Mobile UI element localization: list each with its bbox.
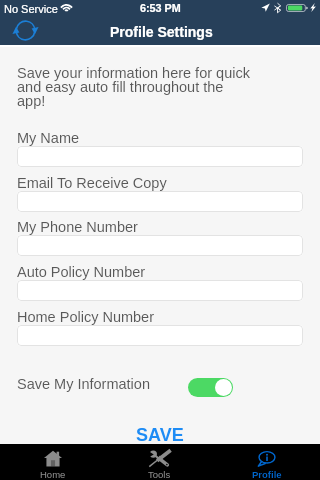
staticText: Tools	[148, 469, 171, 480]
staticText: Profile	[252, 469, 282, 480]
staticText: Home Policy Number	[17, 309, 154, 325]
staticText: Save My Information	[17, 376, 150, 392]
staticText: Auto Policy Number	[17, 264, 146, 280]
button[interactable]: Home Policy Number	[17, 325, 303, 346]
button[interactable]: My Name	[17, 146, 303, 167]
button[interactable]: SAVE	[0, 424, 320, 446]
button[interactable]: Auto Policy Number	[17, 280, 303, 301]
button[interactable]: Profile	[213, 444, 320, 480]
button[interactable]: Email To Receive Copy	[17, 191, 303, 212]
staticText: My Name	[17, 130, 80, 146]
staticText: Save your information here for quick and…	[17, 65, 254, 110]
staticText: Home	[40, 469, 66, 480]
staticText: Email To Receive Copy	[17, 175, 167, 191]
staticText: Profile Settings	[110, 24, 213, 40]
staticText: 6:53 PM	[140, 2, 181, 14]
staticText: SAVE	[136, 425, 184, 445]
staticText: My Phone Number	[17, 219, 138, 235]
button[interactable]: My Phone Number	[17, 235, 303, 256]
button[interactable]: Save My Information toggle	[188, 378, 233, 397]
button[interactable]: Tools	[106, 444, 213, 480]
button[interactable]: Refresh	[12, 18, 39, 43]
button[interactable]: Home	[0, 444, 106, 480]
staticText: No Service	[4, 3, 58, 15]
